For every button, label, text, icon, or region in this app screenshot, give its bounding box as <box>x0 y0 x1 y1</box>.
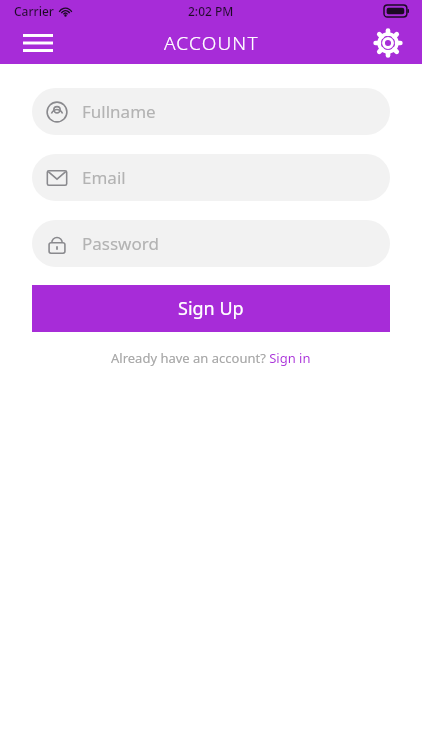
staticText: Fullname <box>82 100 156 123</box>
button[interactable]: Already have an account? Sign in <box>0 349 422 367</box>
staticText: 2:02 PM <box>188 3 234 19</box>
staticText: Sign Up <box>178 296 244 321</box>
button[interactable]: Password <box>32 220 390 267</box>
button[interactable]: Settings <box>366 22 410 64</box>
staticText: Already have an account? Sign in <box>111 349 311 367</box>
button[interactable]: Menu <box>16 22 60 64</box>
button[interactable]: Email <box>32 154 390 201</box>
button[interactable]: Sign Up <box>32 285 390 332</box>
button[interactable]: Fullname <box>32 88 390 135</box>
staticText: Email <box>82 166 126 189</box>
staticText: Password <box>82 232 159 255</box>
staticText: Carrier <box>14 3 54 19</box>
staticText: ACCOUNT <box>164 30 259 56</box>
